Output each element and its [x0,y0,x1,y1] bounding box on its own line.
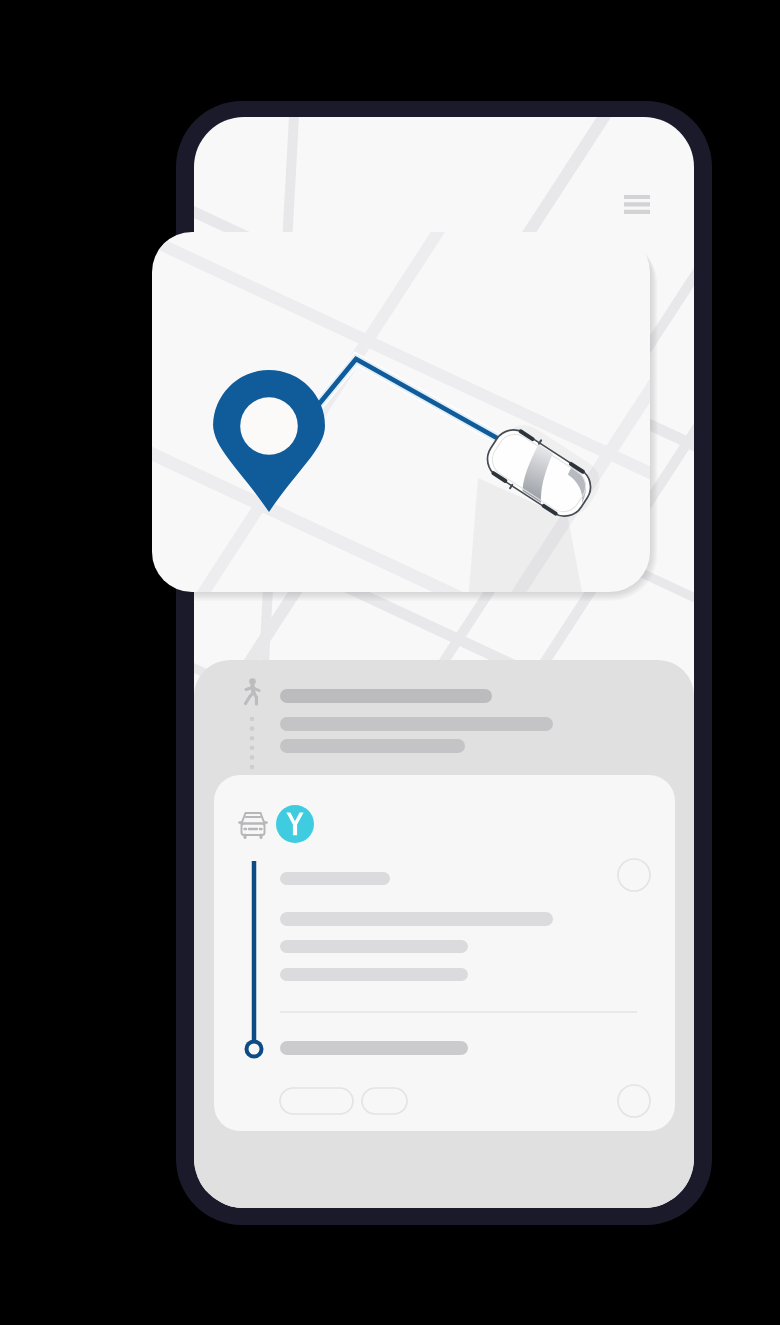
button[interactable]: Map [152,232,650,592]
button[interactable]: Secondary action [362,1088,407,1114]
button[interactable]: Menu [612,186,662,224]
button[interactable]: Favourite [616,1083,652,1119]
button[interactable]: Ride details [214,775,675,1131]
button[interactable]: Primary action [280,1088,353,1114]
button[interactable]: More options [616,857,652,893]
button[interactable]: Walking directions step [232,676,562,756]
